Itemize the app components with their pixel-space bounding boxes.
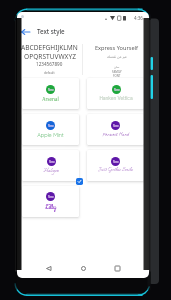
button[interactable]: New xyxy=(22,150,79,181)
staticText: New xyxy=(114,88,120,92)
staticText: FONT xyxy=(113,74,121,78)
staticText: FAMILY xyxy=(112,70,122,74)
staticText: Express Yourself xyxy=(95,44,138,52)
staticText: Text style xyxy=(37,27,65,35)
staticText: New xyxy=(48,124,54,128)
staticText: ABCDEFGHIJKLMN xyxy=(21,43,78,52)
staticText: Arsenal xyxy=(42,95,59,102)
button[interactable]: Home xyxy=(77,262,90,275)
staticText: Apple Mint xyxy=(37,131,64,138)
staticText: عبر عن نفسك xyxy=(107,53,127,61)
staticText: New xyxy=(48,88,54,92)
button[interactable]: New xyxy=(22,78,79,109)
button[interactable]: New xyxy=(22,186,79,217)
staticText: حنان xyxy=(114,64,120,70)
staticText: Halogen xyxy=(43,167,59,175)
button[interactable]: New xyxy=(87,150,144,181)
staticText: Hanken Veltica xyxy=(99,95,133,102)
button[interactable]: New xyxy=(22,114,79,145)
button[interactable]: New xyxy=(87,114,144,145)
staticText: Lilly xyxy=(45,202,56,212)
staticText: New xyxy=(113,160,119,164)
staticText: New xyxy=(113,124,119,128)
staticText: OPQRSTUVWXYZ xyxy=(24,52,76,61)
staticText: New xyxy=(48,195,54,199)
button[interactable]: Back xyxy=(42,262,55,275)
staticText: default xyxy=(44,71,55,75)
staticText: 4:36 xyxy=(134,15,143,21)
staticText: Farwest Hand xyxy=(102,131,129,138)
staticText: 1234567890 xyxy=(36,61,63,67)
staticText: Just Gothic Smile xyxy=(98,167,133,174)
button[interactable]: Recents xyxy=(111,262,124,275)
staticText: New xyxy=(49,160,55,164)
button[interactable]: Back xyxy=(19,25,32,38)
button[interactable]: New xyxy=(87,78,144,109)
